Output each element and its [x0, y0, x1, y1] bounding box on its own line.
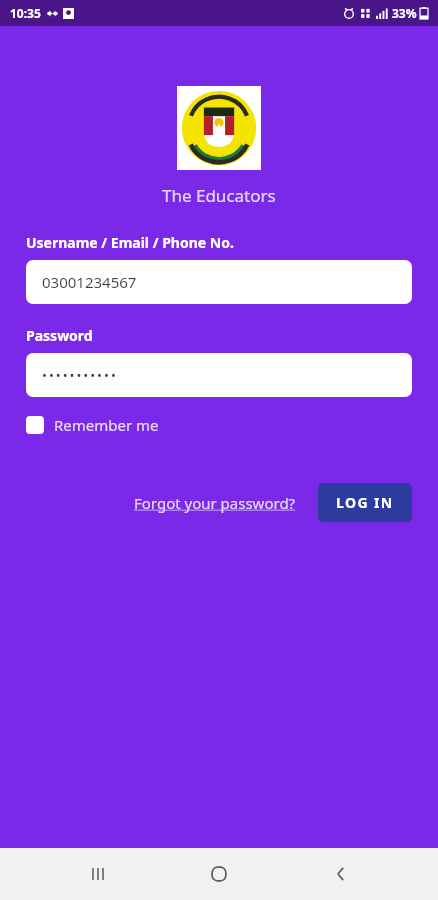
staticText: 33% — [392, 5, 417, 21]
staticText: Forgot your password? — [134, 493, 296, 513]
staticText: LOG IN — [336, 493, 394, 512]
staticText: Password — [26, 326, 93, 345]
button[interactable]: ••••••••••• — [26, 353, 412, 397]
button[interactable]: Back — [317, 850, 365, 898]
staticText: The Educators — [162, 184, 276, 207]
button[interactable]: Home — [195, 850, 243, 898]
staticText: 10:35 — [10, 5, 41, 21]
button[interactable]: Recent apps — [74, 850, 122, 898]
staticText: Remember me — [54, 415, 159, 435]
button[interactable]: 03001234567 — [26, 260, 412, 304]
button[interactable]: Remember me — [26, 413, 159, 437]
button[interactable]: LOG IN — [318, 483, 412, 522]
staticText: 03001234567 — [42, 272, 137, 292]
button[interactable]: Forgot your password? — [130, 489, 300, 517]
staticText: ••••••••••• — [42, 366, 118, 384]
staticText: Username / Email / Phone No. — [26, 233, 234, 252]
